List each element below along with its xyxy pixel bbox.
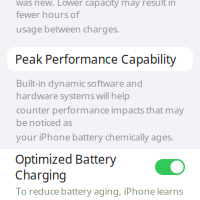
- staticText: Optimized Battery Charging: [15, 151, 116, 183]
- staticText: your iPhone battery chemically ages.: [16, 131, 174, 143]
- staticText: To reduce battery aging, iPhone learns f…: [16, 185, 183, 200]
- staticText: counter performance impacts that may be …: [16, 104, 184, 129]
- button[interactable]: Peak Performance Capability: [7, 47, 193, 71]
- staticText: usage between charges.: [16, 23, 120, 35]
- staticText: was new. Lower capacity may result in fe…: [16, 0, 176, 21]
- staticText: Peak Performance Capability: [15, 51, 176, 67]
- button[interactable]: Optimized Battery Charging: [7, 155, 193, 179]
- staticText: Built-in dynamic software and hardware s…: [16, 77, 143, 102]
